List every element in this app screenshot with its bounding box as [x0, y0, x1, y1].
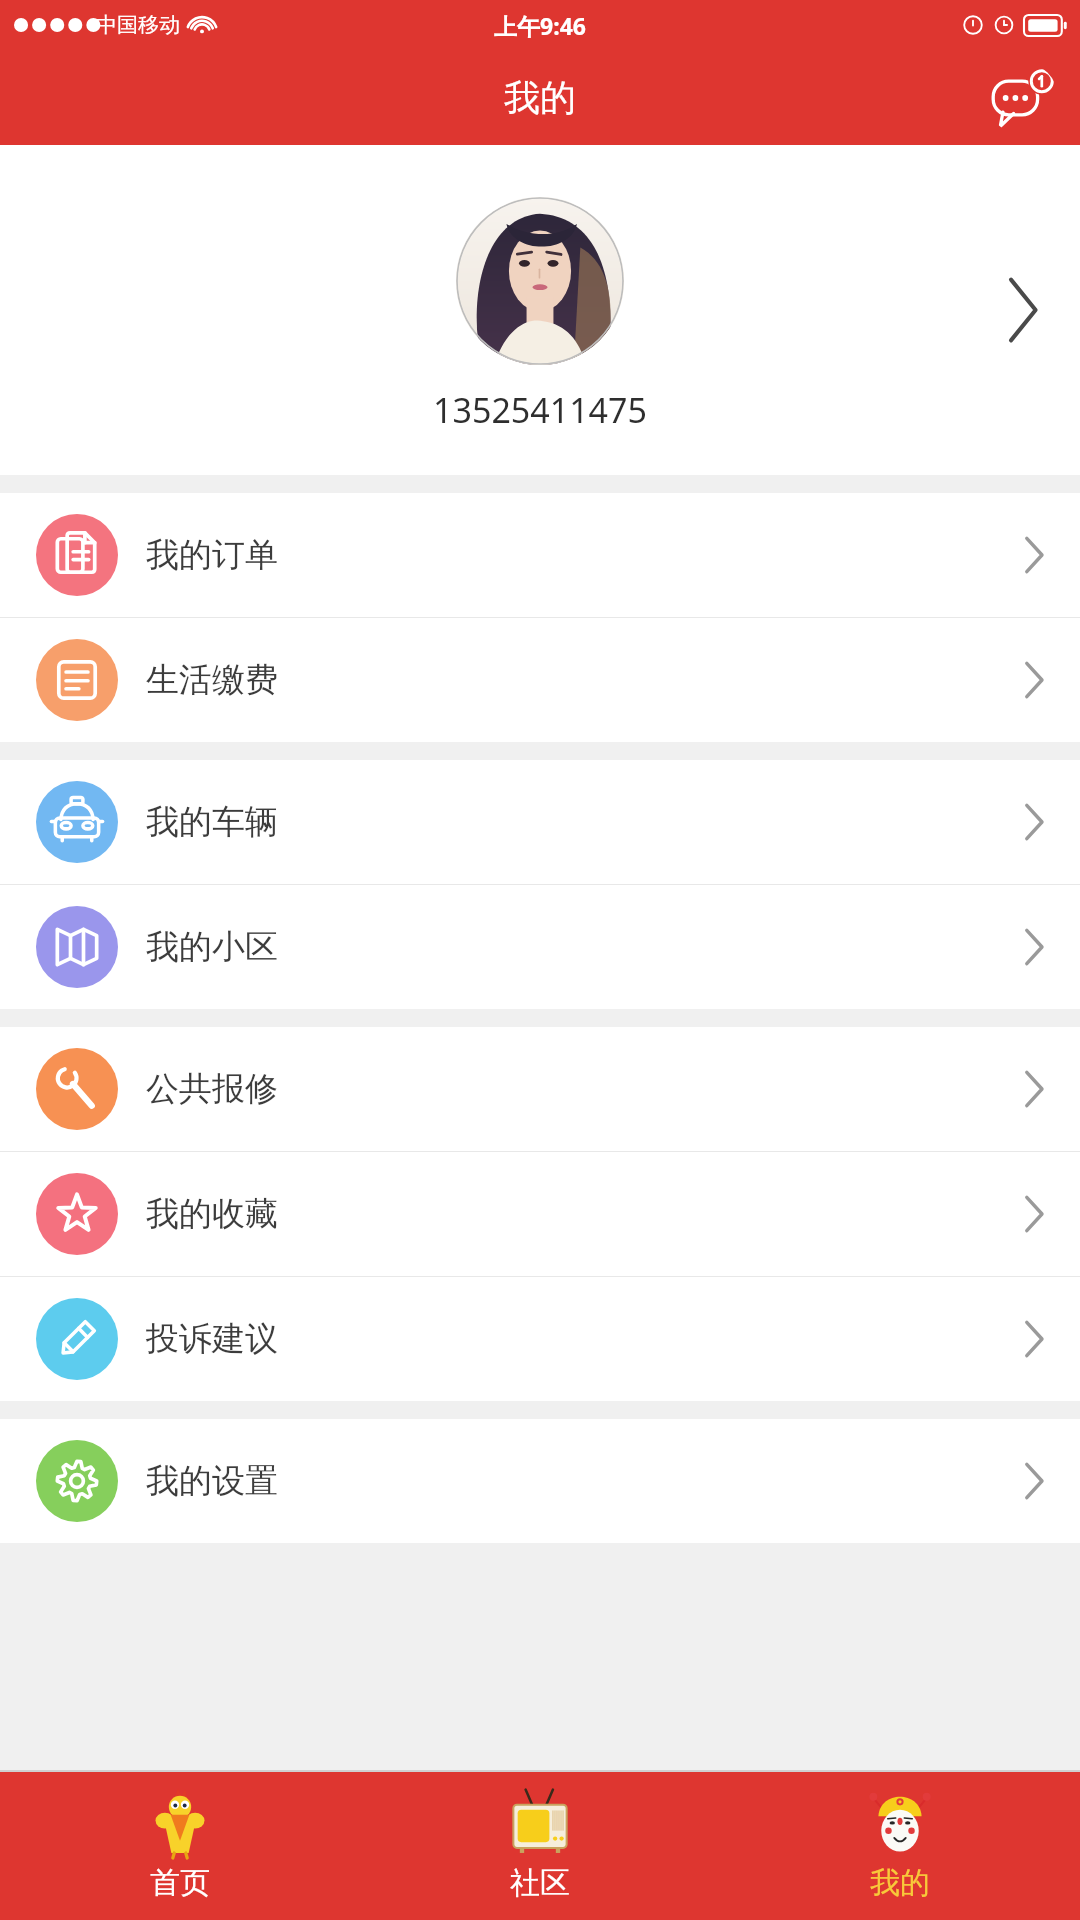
button[interactable]: 我的车辆: [0, 760, 1080, 884]
button[interactable]: 13525411475: [0, 145, 1080, 475]
button[interactable]: 投诉建议: [0, 1277, 1080, 1401]
button[interactable]: 我的收藏: [0, 1152, 1080, 1276]
button[interactable]: 社区: [360, 1772, 720, 1920]
staticText: 我的小区: [146, 926, 278, 968]
staticText: 首页: [150, 1864, 210, 1902]
button[interactable]: 生活缴费: [0, 618, 1080, 742]
button[interactable]: 公共报修: [0, 1027, 1080, 1151]
button[interactable]: 我的设置: [0, 1419, 1080, 1543]
staticText: 我的车辆: [146, 801, 278, 843]
staticText: 上午9:46: [494, 10, 586, 41]
button[interactable]: 我的: [720, 1772, 1080, 1920]
staticText: 13525411475: [433, 387, 647, 433]
button[interactable]: Messages, 1 unread: [986, 62, 1058, 134]
button[interactable]: 我的订单: [0, 493, 1080, 617]
staticText: 生活缴费: [146, 659, 278, 701]
staticText: 社区: [510, 1864, 570, 1902]
staticText: 我的: [504, 75, 576, 120]
staticText: 中国移动: [96, 12, 180, 38]
staticText: 公共报修: [146, 1068, 278, 1110]
staticText: 投诉建议: [146, 1318, 278, 1360]
button[interactable]: 我的小区: [0, 885, 1080, 1009]
staticText: 我的设置: [146, 1460, 278, 1502]
staticText: 我的: [870, 1864, 930, 1902]
staticText: 我的订单: [146, 534, 278, 576]
staticText: 我的收藏: [146, 1193, 278, 1235]
button[interactable]: 首页: [0, 1772, 360, 1920]
